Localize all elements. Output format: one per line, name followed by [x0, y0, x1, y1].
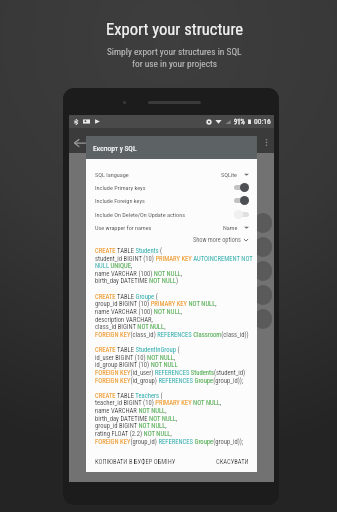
button[interactable]: Include Foreign keys: [95, 194, 249, 207]
staticText: Include Foreign keys: [95, 197, 145, 204]
staticText: Include Primary keys: [95, 184, 146, 191]
staticText: Include On Delete/On Update actions: [95, 211, 185, 218]
staticText: teacher_id BIGINT (10) PRIMARY KEY NOT N…: [95, 399, 222, 407]
staticText: group_id BIGINT (10) PRIMARY KEY NOT NUL…: [95, 300, 217, 308]
staticText: id_group BIGINT (10) NOT NULL: [95, 361, 178, 369]
staticText: Експорт у SQL: [93, 144, 137, 153]
staticText: СКАСУВАТИ: [216, 458, 249, 466]
staticText: CREATE TABLE Groupe (: [95, 293, 158, 301]
staticText: group_id BIGINT NOT NULL,: [95, 422, 167, 430]
button[interactable]: Include Primary keys: [95, 181, 249, 194]
staticText: student_id BIGINT (10) PRIMARY KEY AUTOI…: [95, 255, 253, 263]
staticText: CREATE TABLE Teachers (: [95, 392, 163, 400]
button[interactable]: КОПІЮВАТИ В БУФЕР ОБМІНУ: [95, 458, 176, 466]
staticText: rating FLOAT (2.2) NOT NULL,: [95, 430, 172, 438]
staticText: name VARCHAR NOT NULL,: [95, 407, 167, 415]
staticText: NULL UNIQUE,: [95, 262, 133, 270]
staticText: Name: [223, 224, 238, 231]
staticText: name VARCHAR (100) NOT NULL,: [95, 308, 182, 316]
staticText: 00:16: [254, 117, 271, 126]
staticText: name VARCHAR (100) NOT NULL,: [95, 270, 182, 278]
button[interactable]: Use wrapper for names: [95, 221, 249, 234]
staticText: class_id BIGINT NOT NULL,: [95, 323, 166, 331]
staticText: FOREIGN KEY(id_group) REFERENCES Groupe(…: [95, 377, 244, 385]
staticText: description VARCHAR,: [95, 316, 153, 324]
button[interactable]: СКАСУВАТИ: [216, 458, 249, 466]
staticText: FOREIGN KEY(group_id) REFERENCES Groupe(…: [95, 438, 244, 446]
button[interactable]: SQL language: [95, 168, 249, 181]
staticText: for use in your projects: [132, 58, 218, 69]
button[interactable]: Include On Delete/On Update actions: [95, 208, 249, 221]
staticText: Show more options: [193, 236, 241, 243]
staticText: id_user BIGINT (10) NOT NULL,: [95, 354, 176, 362]
button[interactable]: More options: [261, 137, 272, 148]
button[interactable]: Back: [73, 136, 87, 150]
staticText: Simply export your structures in SQL: [107, 46, 242, 57]
staticText: CREATE TABLE StudentInGroup (: [95, 346, 180, 354]
staticText: FOREIGN KEY(class_id) REFERENCES Classro…: [95, 331, 249, 339]
staticText: 91%: [234, 118, 245, 126]
staticText: Use wrapper for names: [95, 224, 152, 231]
staticText: birth_day DATETIME NOT NULL): [95, 277, 179, 285]
staticText: birth_day DATETIME NOT NULL,: [95, 415, 178, 423]
staticText: CREATE TABLE Students (: [95, 247, 163, 255]
staticText: КОПІЮВАТИ В БУФЕР ОБМІНУ: [95, 458, 176, 466]
staticText: FOREIGN KEY(id_user) REFERENCES Students…: [95, 369, 246, 377]
staticText: SQL language: [95, 171, 129, 178]
staticText: SQLite: [221, 171, 238, 178]
staticText: Export your structure: [106, 20, 244, 39]
button[interactable]: Show more options: [95, 234, 249, 245]
